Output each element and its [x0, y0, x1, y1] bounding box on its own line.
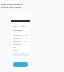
- staticText: Tax: [13, 46, 16, 49]
- staticText: Payment: [13, 29, 23, 32]
- staticText: 12.00: [23, 34, 28, 37]
- button[interactable]: Pay now: [13, 62, 28, 67]
- staticText: Order Summary: [13, 25, 27, 27]
- staticText: Keep your portfolio: [1, 3, 23, 6]
- staticText: Item price: [13, 34, 23, 37]
- staticText: Total: [13, 49, 18, 52]
- staticText: 2: [26, 37, 28, 40]
- staticText: -2.00: [23, 40, 28, 43]
- staticText: Shipping: [13, 43, 21, 46]
- staticText: Discount: [13, 40, 21, 43]
- staticText: Quantity: [13, 37, 21, 40]
- staticText: Pay on Your Phone: [1, 6, 22, 9]
